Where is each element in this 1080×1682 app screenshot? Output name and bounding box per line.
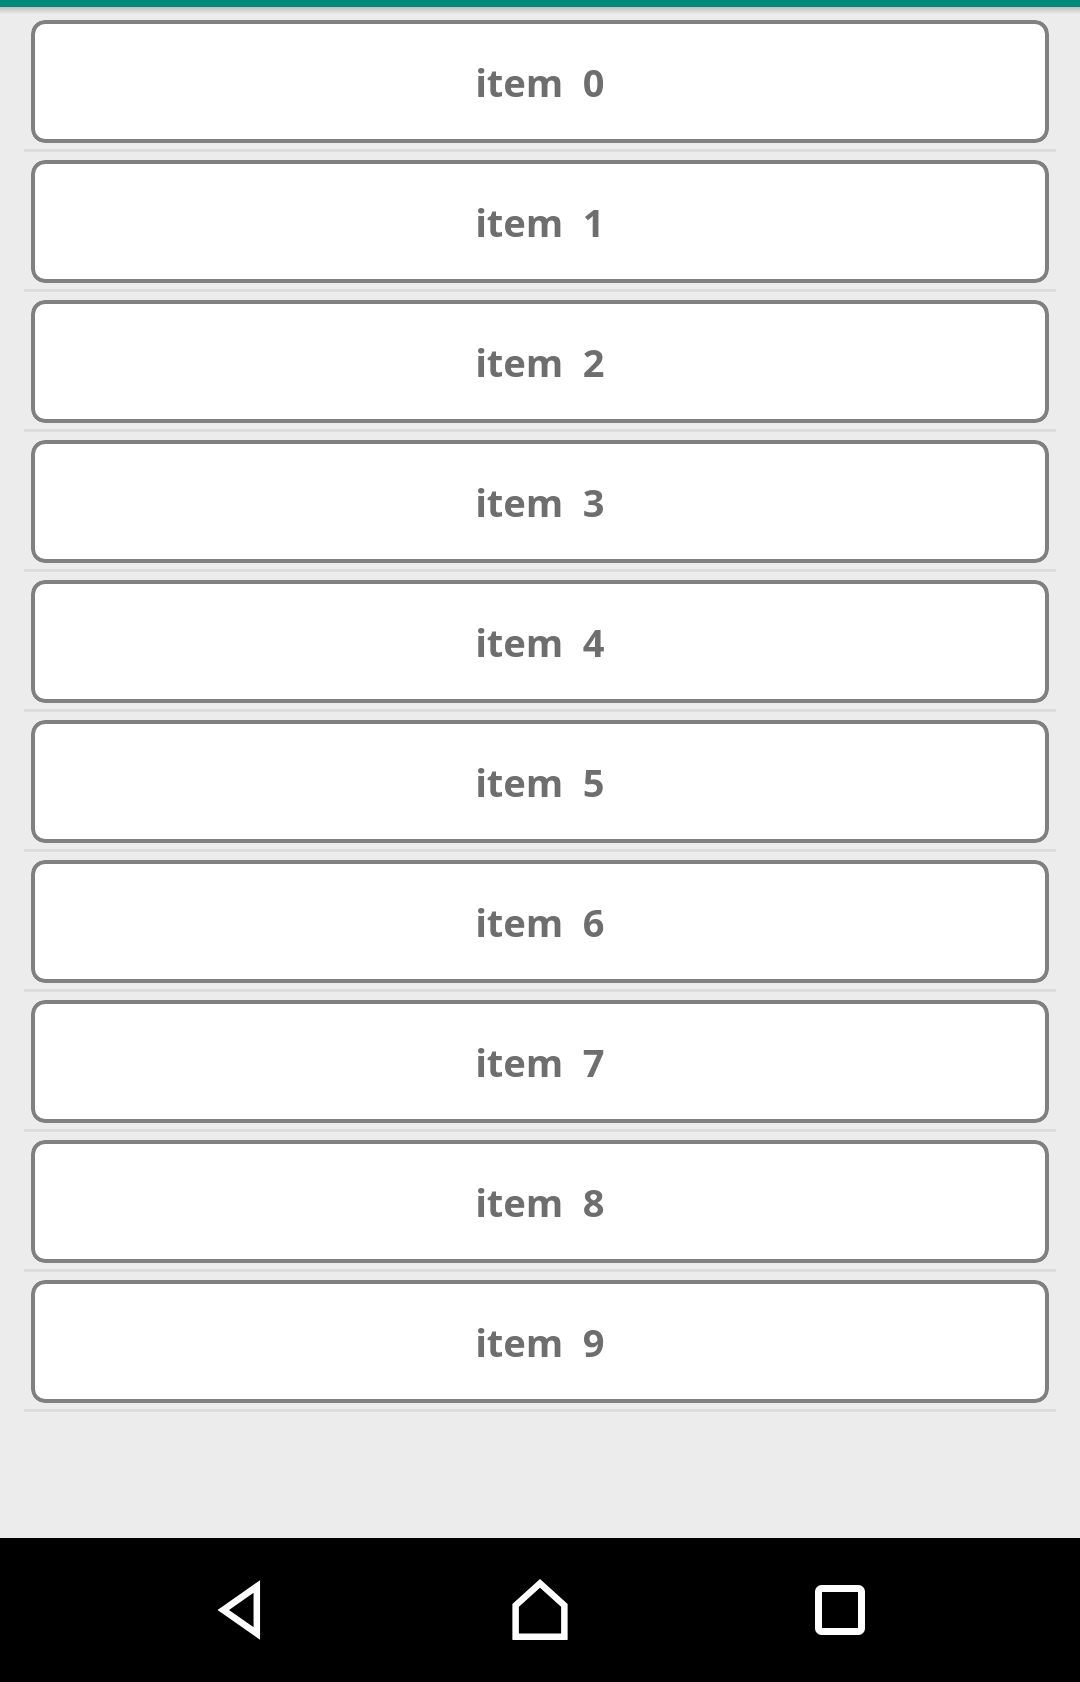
staticText: item 0 (475, 56, 605, 108)
button[interactable]: item 3 (0, 434, 1080, 574)
button[interactable]: item 4 (0, 574, 1080, 714)
staticText: item 6 (475, 896, 605, 948)
button[interactable]: item 1 (0, 154, 1080, 294)
staticText: item 5 (475, 756, 605, 808)
button[interactable]: Recent apps (780, 1550, 900, 1670)
button[interactable]: item 5 (0, 714, 1080, 854)
staticText: item 7 (475, 1036, 605, 1088)
staticText: item 9 (475, 1316, 605, 1368)
staticText: item 1 (475, 196, 605, 248)
button[interactable]: item 7 (0, 994, 1080, 1134)
button[interactable]: item 0 (0, 14, 1080, 154)
button[interactable]: Home (480, 1550, 600, 1670)
button[interactable]: item 8 (0, 1134, 1080, 1274)
staticText: item 3 (475, 476, 605, 528)
staticText: item 4 (475, 616, 605, 668)
staticText: item 8 (475, 1176, 605, 1228)
button[interactable]: item 6 (0, 854, 1080, 994)
button[interactable]: item 2 (0, 294, 1080, 434)
button[interactable]: Back (180, 1550, 300, 1670)
button[interactable]: item 9 (0, 1274, 1080, 1414)
staticText: item 2 (475, 336, 605, 388)
